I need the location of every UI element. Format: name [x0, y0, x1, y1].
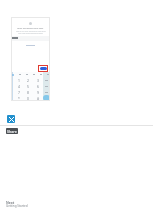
button[interactable]: Share: [6, 128, 18, 134]
button[interactable]: 7: [15, 89, 23, 95]
staticText: #: [37, 96, 40, 101]
button[interactable]: 1: [15, 77, 23, 83]
staticText: 6: [37, 84, 39, 89]
button[interactable]: *: [15, 95, 23, 101]
staticText: Getting Started: [6, 204, 28, 208]
staticText: 5: [27, 84, 29, 89]
staticText: 9: [37, 90, 39, 95]
button[interactable]: Email or phone: [11, 36, 50, 41]
button[interactable]: 5: [24, 83, 32, 89]
button[interactable]: 9: [34, 89, 42, 95]
staticText: *: [18, 96, 20, 101]
staticText: 3: [37, 78, 39, 83]
staticText: Learn and extend your skills: [17, 27, 44, 30]
button[interactable]: #: [34, 95, 42, 101]
staticText: Share: [7, 129, 17, 134]
button[interactable]: 3: [34, 77, 42, 83]
button[interactable]: Next: [38, 65, 48, 72]
staticText: Next: [6, 200, 15, 205]
staticText: 7: [18, 90, 20, 95]
button[interactable]: 0: [24, 95, 32, 101]
button[interactable]: Enter: [43, 95, 50, 101]
staticText: 1: [18, 78, 20, 83]
button[interactable]: 8: [24, 89, 32, 95]
button[interactable]: 6: [34, 83, 42, 89]
button[interactable]: 4: [15, 83, 23, 89]
button[interactable]: Expand image: [7, 115, 15, 123]
button[interactable]: 2: [24, 77, 32, 83]
staticText: 0: [27, 96, 29, 101]
staticText: Sign in to your account to see what: [16, 30, 46, 32]
staticText: you have been learning lately: [18, 32, 43, 34]
staticText: 2: [27, 78, 29, 83]
staticText: 4: [18, 84, 20, 89]
staticText: 8: [27, 90, 29, 95]
